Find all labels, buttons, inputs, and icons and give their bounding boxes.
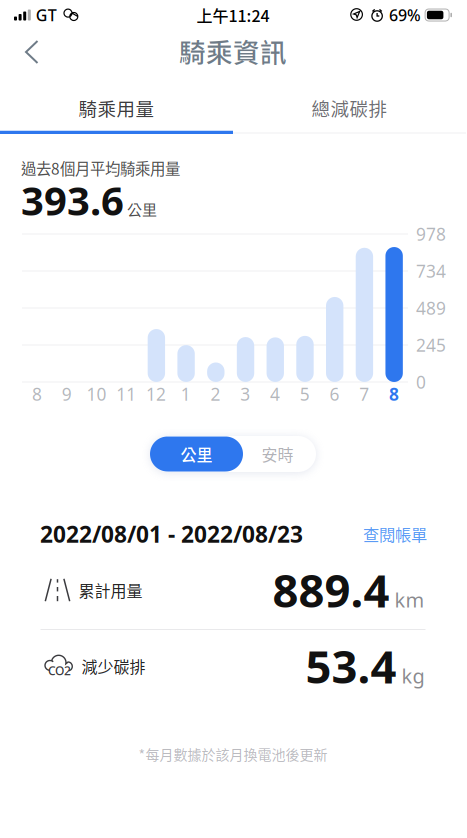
button[interactable]: 騎乘用量: [0, 82, 233, 134]
staticText: 2: [210, 382, 220, 405]
staticText: 978: [416, 222, 446, 245]
staticText: 4: [270, 382, 280, 405]
staticText: 總減碳排: [311, 95, 387, 121]
staticText: 9: [62, 382, 72, 405]
staticText: 12: [146, 382, 166, 405]
staticText: *每月數據於該月換電池後更新: [138, 744, 327, 764]
staticText: 8: [32, 382, 42, 405]
staticText: 3: [240, 382, 250, 405]
staticText: 騎乘資訊: [179, 32, 287, 70]
staticText: 10: [86, 382, 106, 405]
button[interactable]: 安時: [241, 436, 314, 471]
staticText: 53.4: [305, 636, 396, 696]
staticText: 過去8個月平均騎乘用量: [21, 157, 180, 179]
staticText: 安時: [261, 442, 293, 466]
staticText: kg: [401, 662, 424, 689]
staticText: 489: [416, 296, 446, 319]
staticText: 5: [300, 382, 310, 405]
staticText: 6: [329, 382, 339, 405]
staticText: 0: [416, 370, 426, 393]
staticText: 公里: [127, 198, 157, 220]
staticText: 累計用量: [78, 578, 142, 602]
staticText: 2022/08/01 - 2022/08/23: [40, 519, 303, 549]
staticText: 減少碳排: [81, 654, 145, 678]
staticText: 889.4: [272, 560, 389, 620]
staticText: 245: [416, 333, 446, 356]
staticText: km: [394, 586, 424, 613]
staticText: 11: [116, 382, 136, 405]
staticText: CO2: [48, 662, 71, 678]
staticText: GT: [36, 4, 57, 26]
staticText: 393.6: [21, 173, 124, 226]
button[interactable]: 總減碳排: [233, 82, 466, 134]
staticText: 上午11:24: [196, 3, 269, 27]
staticText: 734: [416, 259, 446, 282]
staticText: 7: [359, 382, 369, 405]
staticText: 1: [181, 382, 191, 405]
staticText: 69%: [389, 4, 421, 26]
staticText: 騎乘用量: [78, 95, 154, 121]
staticText: 公里: [180, 442, 212, 466]
staticText: 8: [389, 382, 399, 405]
staticText: 查閱帳單: [363, 522, 427, 546]
button[interactable]: Back: [10, 28, 54, 76]
button[interactable]: 公里: [150, 436, 243, 471]
button[interactable]: 查閱帳單: [355, 521, 427, 547]
